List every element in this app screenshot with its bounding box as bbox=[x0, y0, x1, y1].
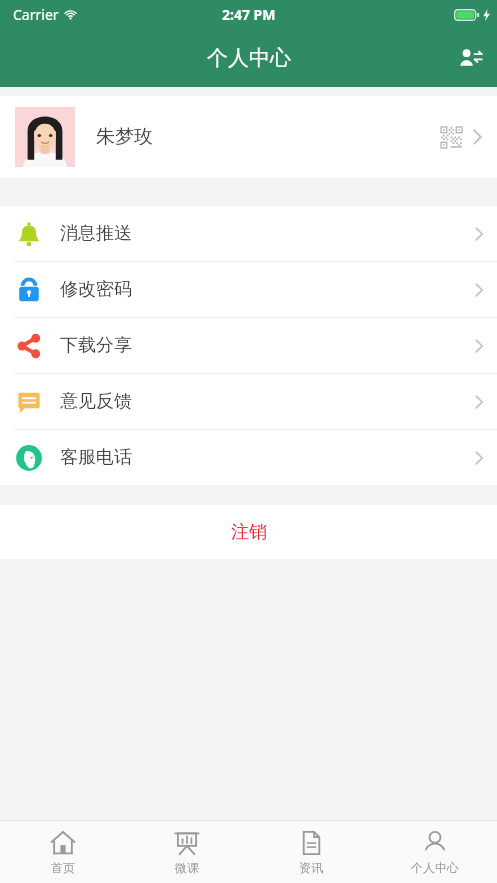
button[interactable]: 下载分享 bbox=[0, 318, 497, 373]
button[interactable]: 修改密码 bbox=[0, 262, 497, 317]
button[interactable]: 注销 bbox=[0, 505, 497, 559]
button[interactable]: 意见反馈 bbox=[0, 374, 497, 429]
staticText: 注销 bbox=[231, 521, 267, 544]
button[interactable]: 微课 bbox=[125, 821, 249, 883]
staticText: 资讯 bbox=[299, 860, 323, 875]
button[interactable]: 资讯 bbox=[249, 821, 373, 883]
button[interactable]: 消息推送 bbox=[0, 206, 497, 261]
button[interactable]: QR code bbox=[438, 124, 464, 150]
staticText: 意见反馈 bbox=[60, 390, 132, 413]
staticText: Carrier bbox=[13, 5, 59, 24]
staticText: 客服电话 bbox=[60, 446, 132, 469]
staticText: 朱梦玫 bbox=[96, 125, 153, 149]
staticText: 个人中心 bbox=[207, 45, 291, 71]
button[interactable]: 首页 bbox=[0, 821, 125, 883]
staticText: 2:47 PM bbox=[222, 5, 276, 24]
button[interactable]: Switch account bbox=[443, 31, 497, 85]
staticText: 修改密码 bbox=[60, 278, 132, 301]
staticText: 个人中心 bbox=[411, 860, 459, 875]
button[interactable]: 朱梦玫 bbox=[0, 96, 497, 178]
staticText: 微课 bbox=[175, 860, 199, 875]
staticText: 首页 bbox=[51, 860, 75, 875]
button[interactable]: 客服电话 bbox=[0, 430, 497, 485]
button[interactable]: 个人中心 bbox=[373, 821, 497, 883]
staticText: 下载分享 bbox=[60, 334, 132, 357]
staticText: 消息推送 bbox=[60, 222, 132, 245]
